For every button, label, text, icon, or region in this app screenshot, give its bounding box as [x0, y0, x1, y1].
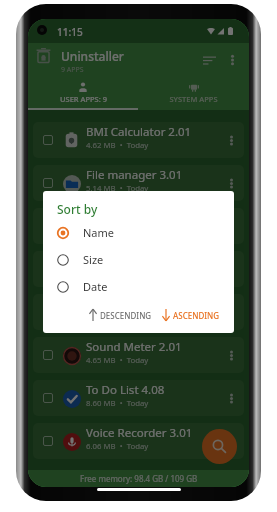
button[interactable]: App icon — [36, 48, 51, 63]
staticText: Uninstaller — [61, 48, 124, 64]
button[interactable]: Item options — [224, 388, 238, 408]
staticText: To Do List 4.08 — [86, 382, 165, 398]
button[interactable]: Size — [43, 246, 234, 273]
button[interactable]: SYSTEM APPS — [138, 78, 249, 108]
staticText: 9 APPS — [61, 65, 84, 75]
button[interactable]: Notes 2.40 — [33, 251, 244, 287]
staticText: 8.60 MB • Today — [86, 398, 149, 409]
staticText: 11:15 — [57, 25, 83, 39]
staticText: Date — [83, 279, 108, 294]
button[interactable]: Search — [202, 429, 237, 464]
staticText: BMI Calculator 2.01 — [86, 124, 192, 140]
button[interactable]: More options — [224, 49, 240, 71]
staticText: QR Scanner 1.06 — [86, 296, 175, 312]
staticText: Size — [83, 252, 104, 267]
staticText: 2.74 MB • Today — [86, 312, 149, 323]
staticText: Image Editor 1.22 — [86, 210, 182, 226]
button[interactable]: Item options — [224, 345, 238, 365]
staticText: Sort by — [57, 201, 98, 217]
button[interactable]: DESCENDING — [86, 305, 154, 325]
button[interactable]: USER APPS: 9 — [28, 78, 138, 108]
button[interactable]: Image Editor 1.22 — [33, 208, 244, 244]
staticText: File manager 3.01 — [86, 167, 183, 183]
button[interactable]: Item options — [224, 130, 238, 150]
staticText: DESCENDING — [100, 310, 152, 321]
staticText: 6.06 MB • Today — [86, 441, 149, 452]
staticText: Free memory: 98.4 GB / 109 GB — [80, 473, 198, 484]
staticText: 5.14 MB • Today — [86, 183, 149, 194]
button[interactable]: BMI Calculator 2.01 — [33, 122, 244, 158]
button[interactable]: To Do List 4.08 — [33, 380, 244, 416]
button[interactable]: Voice Recorder 3.01 — [33, 423, 244, 459]
button[interactable]: ASCENDING — [159, 305, 222, 325]
button[interactable]: File manager 3.01 — [33, 165, 244, 201]
staticText: Voice Recorder 3.01 — [86, 425, 193, 441]
staticText: Sound Meter 2.01 — [86, 339, 182, 355]
button[interactable]: Sort — [198, 49, 220, 71]
button[interactable]: Sound Meter 2.01 — [33, 337, 244, 373]
staticText: Notes 2.40 — [86, 253, 144, 269]
button[interactable]: Name — [43, 219, 234, 246]
button[interactable]: Item options — [224, 431, 238, 451]
staticText: 7.31 MB • Today — [86, 226, 149, 237]
staticText: ASCENDING — [173, 310, 220, 321]
button[interactable]: Item options — [224, 302, 238, 322]
button[interactable]: Item options — [224, 216, 238, 236]
staticText: USER APPS: 9 — [60, 94, 107, 104]
staticText: Name — [83, 225, 115, 240]
button[interactable]: Item options — [224, 259, 238, 279]
staticText: 4.62 MB • Today — [86, 140, 149, 151]
staticText: 4.65 MB • Today — [86, 355, 149, 366]
button[interactable]: Date — [43, 273, 234, 300]
button[interactable]: QR Scanner 1.06 — [33, 294, 244, 330]
staticText: SYSTEM APPS — [169, 94, 218, 104]
button[interactable]: Item options — [224, 173, 238, 193]
